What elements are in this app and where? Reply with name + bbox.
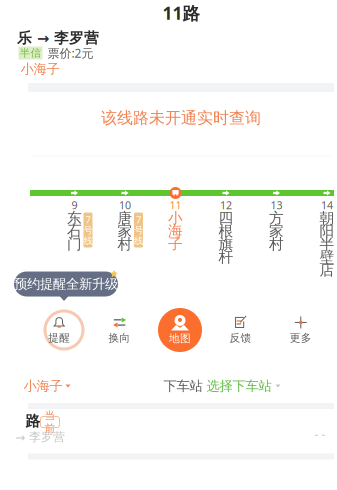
staticText: 14 <box>321 198 333 212</box>
staticText: 预约提醒全新升级 <box>14 276 118 292</box>
staticText: 店 <box>319 261 334 279</box>
button[interactable]: 11路 <box>146 4 216 22</box>
staticText: 反馈 <box>229 331 251 344</box>
staticText: 12 <box>220 198 232 212</box>
button[interactable]: 提醒 <box>29 307 89 352</box>
staticText: 7 <box>85 213 90 226</box>
staticText: 村 <box>269 235 284 253</box>
staticText: 旗 <box>218 235 233 253</box>
staticText: 提醒 <box>48 331 70 344</box>
button[interactable]: 换向 <box>89 307 150 352</box>
staticText: 换向 <box>109 331 131 344</box>
staticText: 根 <box>218 222 233 240</box>
staticText: 10 <box>119 198 131 212</box>
staticText: 阳 <box>319 222 334 240</box>
staticText: 家 <box>117 222 132 240</box>
staticText: 线 <box>134 235 143 247</box>
staticText: 朝 <box>319 209 334 227</box>
staticText: - - <box>314 426 325 442</box>
staticText: 更多 <box>290 331 312 344</box>
staticText: 小 <box>168 209 183 227</box>
staticText: 7 <box>136 213 141 226</box>
staticText: 小海子 <box>23 378 62 394</box>
button[interactable]: 下车站 <box>163 378 280 394</box>
staticText: 四 <box>218 209 233 227</box>
staticText: 小海子 <box>20 61 59 77</box>
staticText: 线 <box>83 235 92 247</box>
staticText: 海 <box>168 222 183 240</box>
staticText: 当前 <box>44 409 55 435</box>
staticText: 半信 <box>19 46 41 59</box>
staticText: 村 <box>117 235 132 253</box>
button[interactable]: 地图 <box>150 307 210 352</box>
staticText: 半 <box>319 235 334 253</box>
staticText: 地图 <box>169 332 191 345</box>
button[interactable]: 更多 <box>271 307 331 352</box>
staticText: 号 <box>134 225 143 236</box>
staticText: 唐 <box>117 209 132 227</box>
button[interactable]: 反馈 <box>210 307 271 352</box>
staticText: 下车站 <box>163 378 202 394</box>
staticText: 方 <box>269 209 284 227</box>
staticText: 11 <box>169 198 181 212</box>
staticText: 门 <box>67 235 82 253</box>
button[interactable]: 小海子 <box>23 378 70 394</box>
staticText: 选择下车站 <box>206 378 271 394</box>
staticText: 子 <box>168 235 183 253</box>
staticText: 壁 <box>319 248 334 266</box>
staticText: 9 <box>71 198 77 212</box>
button[interactable]: 路 <box>0 0 337 490</box>
staticText: 东 <box>67 209 82 227</box>
staticText: 号 <box>83 225 92 236</box>
staticText: 家 <box>269 222 284 240</box>
staticText: 11路 <box>162 1 199 24</box>
staticText: 13 <box>270 198 282 212</box>
staticText: 该线路未开通实时查询 <box>101 108 261 128</box>
staticText: 路 <box>25 412 40 430</box>
staticText: 票价:2元 <box>47 45 93 61</box>
staticText: 杆 <box>218 248 233 266</box>
staticText: → 李罗营 <box>15 430 65 444</box>
staticText: 乐 → 李罗营 <box>17 29 99 47</box>
staticText: 石 <box>67 222 82 240</box>
